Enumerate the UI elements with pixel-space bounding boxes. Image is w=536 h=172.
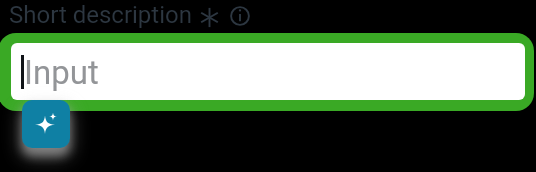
button[interactable]: More information	[228, 4, 252, 28]
button[interactable]: Generate with AI	[22, 100, 70, 148]
staticText: Input	[24, 53, 99, 92]
button[interactable]: Input	[11, 43, 525, 100]
staticText: Short description	[9, 1, 192, 29]
